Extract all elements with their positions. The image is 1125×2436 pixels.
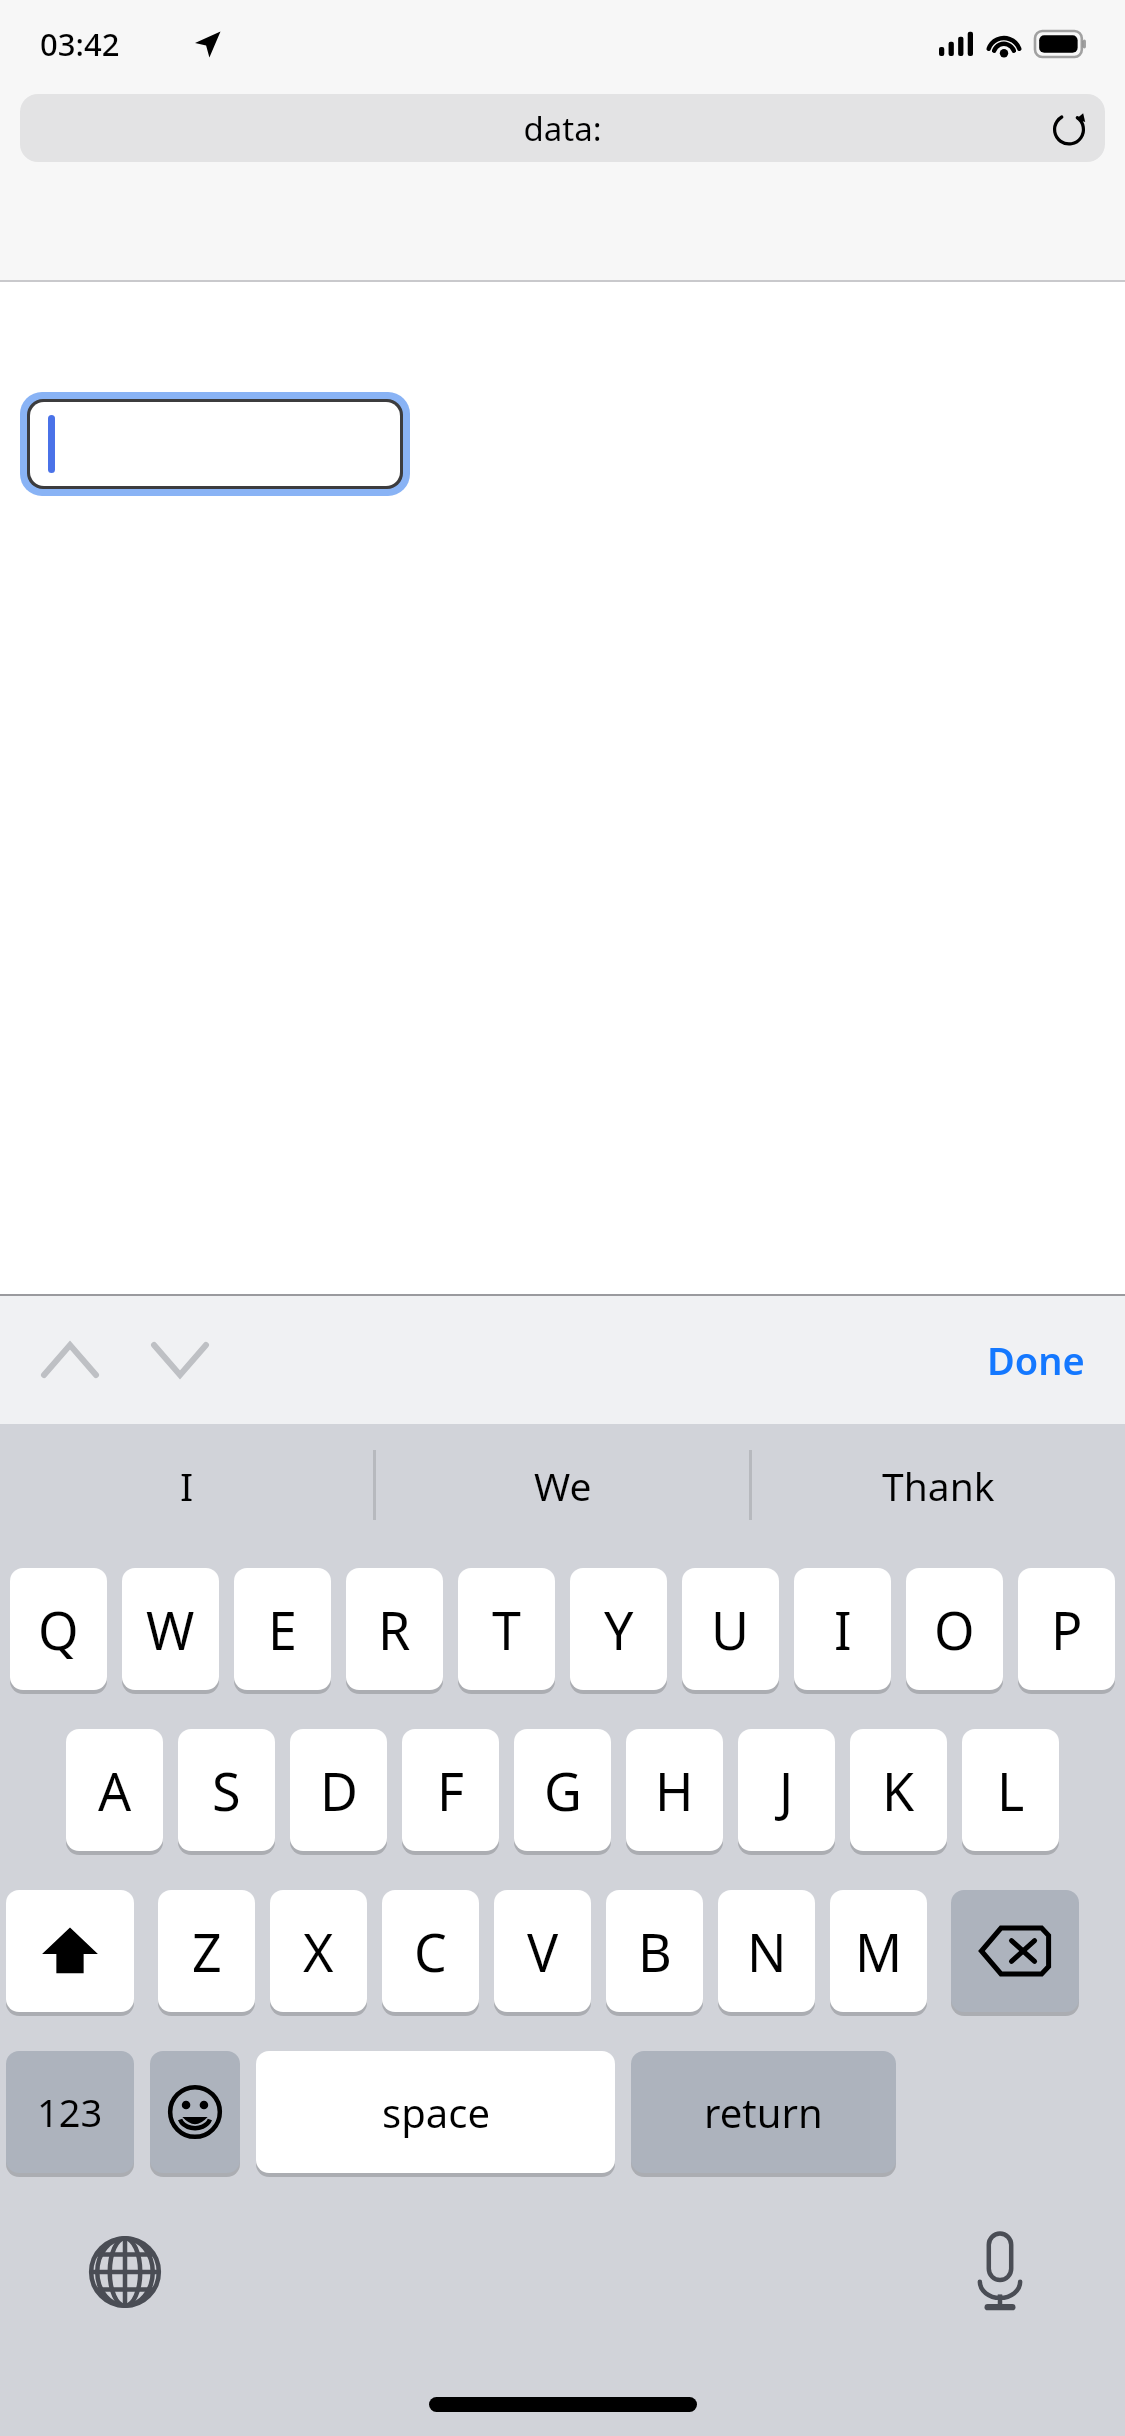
button[interactable]: T [458,1568,555,1694]
staticText: Y [604,1594,634,1665]
button[interactable]: We [376,1424,749,1546]
staticText: H [655,1755,694,1826]
staticText: B [638,1916,672,1987]
button[interactable]: H [626,1729,723,1855]
button[interactable]: I [794,1568,891,1694]
staticText: N [747,1916,787,1987]
button[interactable]: R [346,1568,443,1694]
staticText: V [527,1916,559,1987]
staticText: I [180,1459,194,1512]
button[interactable]: Q [10,1568,107,1694]
staticText: K [882,1755,915,1826]
staticText: W [146,1594,195,1665]
staticText: space [382,2085,490,2139]
button[interactable]: Y [570,1568,667,1694]
staticText: 123 [37,2086,103,2138]
button[interactable]: return [631,2051,896,2177]
button[interactable]: B [606,1890,703,2016]
button[interactable]: C [382,1890,479,2016]
button[interactable] [30,402,400,486]
staticText: E [268,1594,297,1665]
button[interactable]: Shift [6,1890,134,2016]
staticText: data: [523,106,602,151]
button[interactable]: data: [20,94,1105,162]
staticText: Z [192,1916,222,1987]
button[interactable]: P [1018,1568,1115,1694]
button[interactable]: Next field [138,1318,222,1402]
staticText: A [98,1755,132,1826]
button[interactable]: 123 [6,2051,134,2177]
button[interactable]: Done [967,1318,1105,1402]
staticText: Thank [882,1459,995,1512]
staticText: J [779,1755,794,1826]
button[interactable]: Previous field [28,1318,112,1402]
staticText: F [437,1755,464,1826]
staticText: L [997,1755,1025,1826]
button[interactable]: Z [158,1890,255,2016]
button[interactable]: Thank [752,1424,1125,1546]
button[interactable]: N [718,1890,815,2016]
button[interactable]: E [234,1568,331,1694]
button[interactable]: V [494,1890,591,2016]
staticText: U [711,1594,750,1665]
button[interactable]: U [682,1568,779,1694]
staticText: We [534,1459,592,1512]
button[interactable]: F [402,1729,499,1855]
button[interactable]: Change keyboard language [70,2217,180,2327]
button[interactable]: space [256,2051,615,2177]
staticText: D [320,1755,358,1826]
staticText: Q [38,1594,79,1665]
button[interactable]: J [738,1729,835,1855]
button[interactable]: I [0,1424,373,1546]
staticText: C [414,1916,447,1987]
button[interactable]: K [850,1729,947,1855]
staticText: Done [987,1334,1085,1386]
button[interactable]: M [830,1890,927,2016]
staticText: X [303,1916,334,1987]
button[interactable]: O [906,1568,1003,1694]
button[interactable]: Backspace [951,1890,1079,2016]
button[interactable]: D [290,1729,387,1855]
button[interactable]: X [270,1890,367,2016]
staticText: R [378,1594,411,1665]
staticText: T [492,1594,521,1665]
button[interactable]: Reload page [1041,100,1097,156]
button[interactable]: G [514,1729,611,1855]
button[interactable]: W [122,1568,219,1694]
button[interactable]: L [962,1729,1059,1855]
button[interactable]: Dictation [945,2217,1055,2327]
staticText: M [855,1916,903,1987]
staticText: P [1051,1594,1083,1665]
staticText: I [834,1594,852,1665]
staticText: O [934,1594,975,1665]
staticText: return [704,2085,823,2139]
button[interactable]: S [178,1729,275,1855]
staticText: S [212,1755,241,1826]
button[interactable]: A [66,1729,163,1855]
button[interactable]: Emoji keyboard [150,2051,240,2177]
staticText: G [544,1755,582,1826]
staticText: 03:42 [40,23,120,65]
